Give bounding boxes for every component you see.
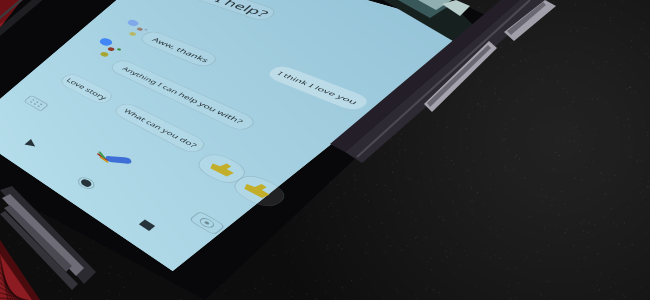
button[interactable]: Google Assistant conversation on a phone — [0, 0, 650, 300]
